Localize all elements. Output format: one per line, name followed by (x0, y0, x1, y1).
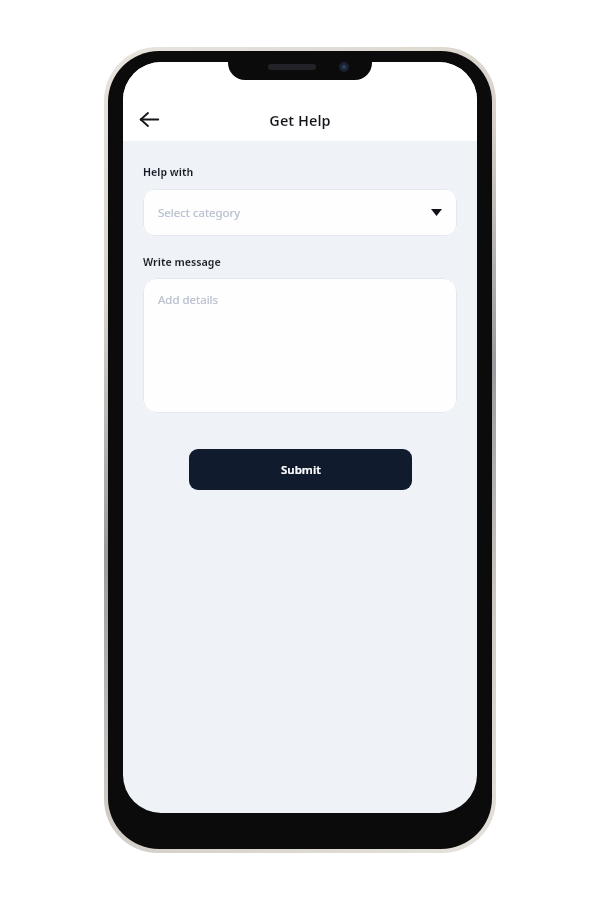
button[interactable]: Submit (189, 449, 412, 490)
staticText: Help with (143, 165, 194, 179)
button[interactable]: Back (127, 97, 171, 141)
staticText: Add details (158, 292, 219, 308)
staticText: Write message (143, 255, 221, 269)
button[interactable]: Add details (143, 278, 457, 413)
staticText: Select category (158, 205, 431, 221)
staticText: Submit (281, 462, 321, 478)
button[interactable]: Select category (143, 189, 457, 236)
staticText: Get Help (123, 110, 477, 130)
